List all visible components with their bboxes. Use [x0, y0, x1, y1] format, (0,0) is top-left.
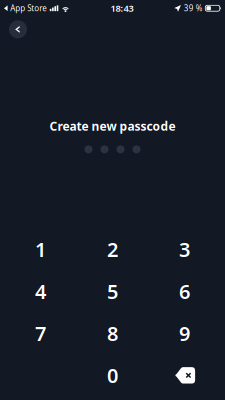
button[interactable]: 1 — [4, 228, 76, 270]
button[interactable]: Back — [3, 16, 33, 42]
button[interactable]: 9 — [148, 312, 220, 354]
staticText: 4 — [35, 278, 46, 305]
staticText: 6 — [179, 278, 190, 305]
staticText: 5 — [107, 278, 118, 305]
staticText: 39 % — [184, 3, 203, 13]
button[interactable]: Delete — [148, 354, 220, 396]
button[interactable]: 3 — [148, 228, 220, 270]
button[interactable]: 4 — [4, 270, 76, 312]
button[interactable]: 8 — [76, 312, 148, 354]
staticText: 0 — [107, 362, 118, 389]
staticText: 18:43 — [110, 2, 133, 14]
button[interactable]: 7 — [4, 312, 76, 354]
staticText: 7 — [35, 320, 46, 347]
button[interactable]: 5 — [76, 270, 148, 312]
staticText: 1 — [35, 236, 46, 263]
button[interactable]: 0 — [76, 354, 148, 396]
staticText: Create new passcode — [49, 118, 175, 134]
staticText: 3 — [179, 236, 190, 263]
staticText: 8 — [107, 320, 118, 347]
button[interactable]: 2 — [76, 228, 148, 270]
staticText: 2 — [107, 236, 118, 263]
staticText: 9 — [179, 320, 190, 347]
button[interactable]: 6 — [148, 270, 220, 312]
staticText: App Store — [10, 3, 47, 13]
